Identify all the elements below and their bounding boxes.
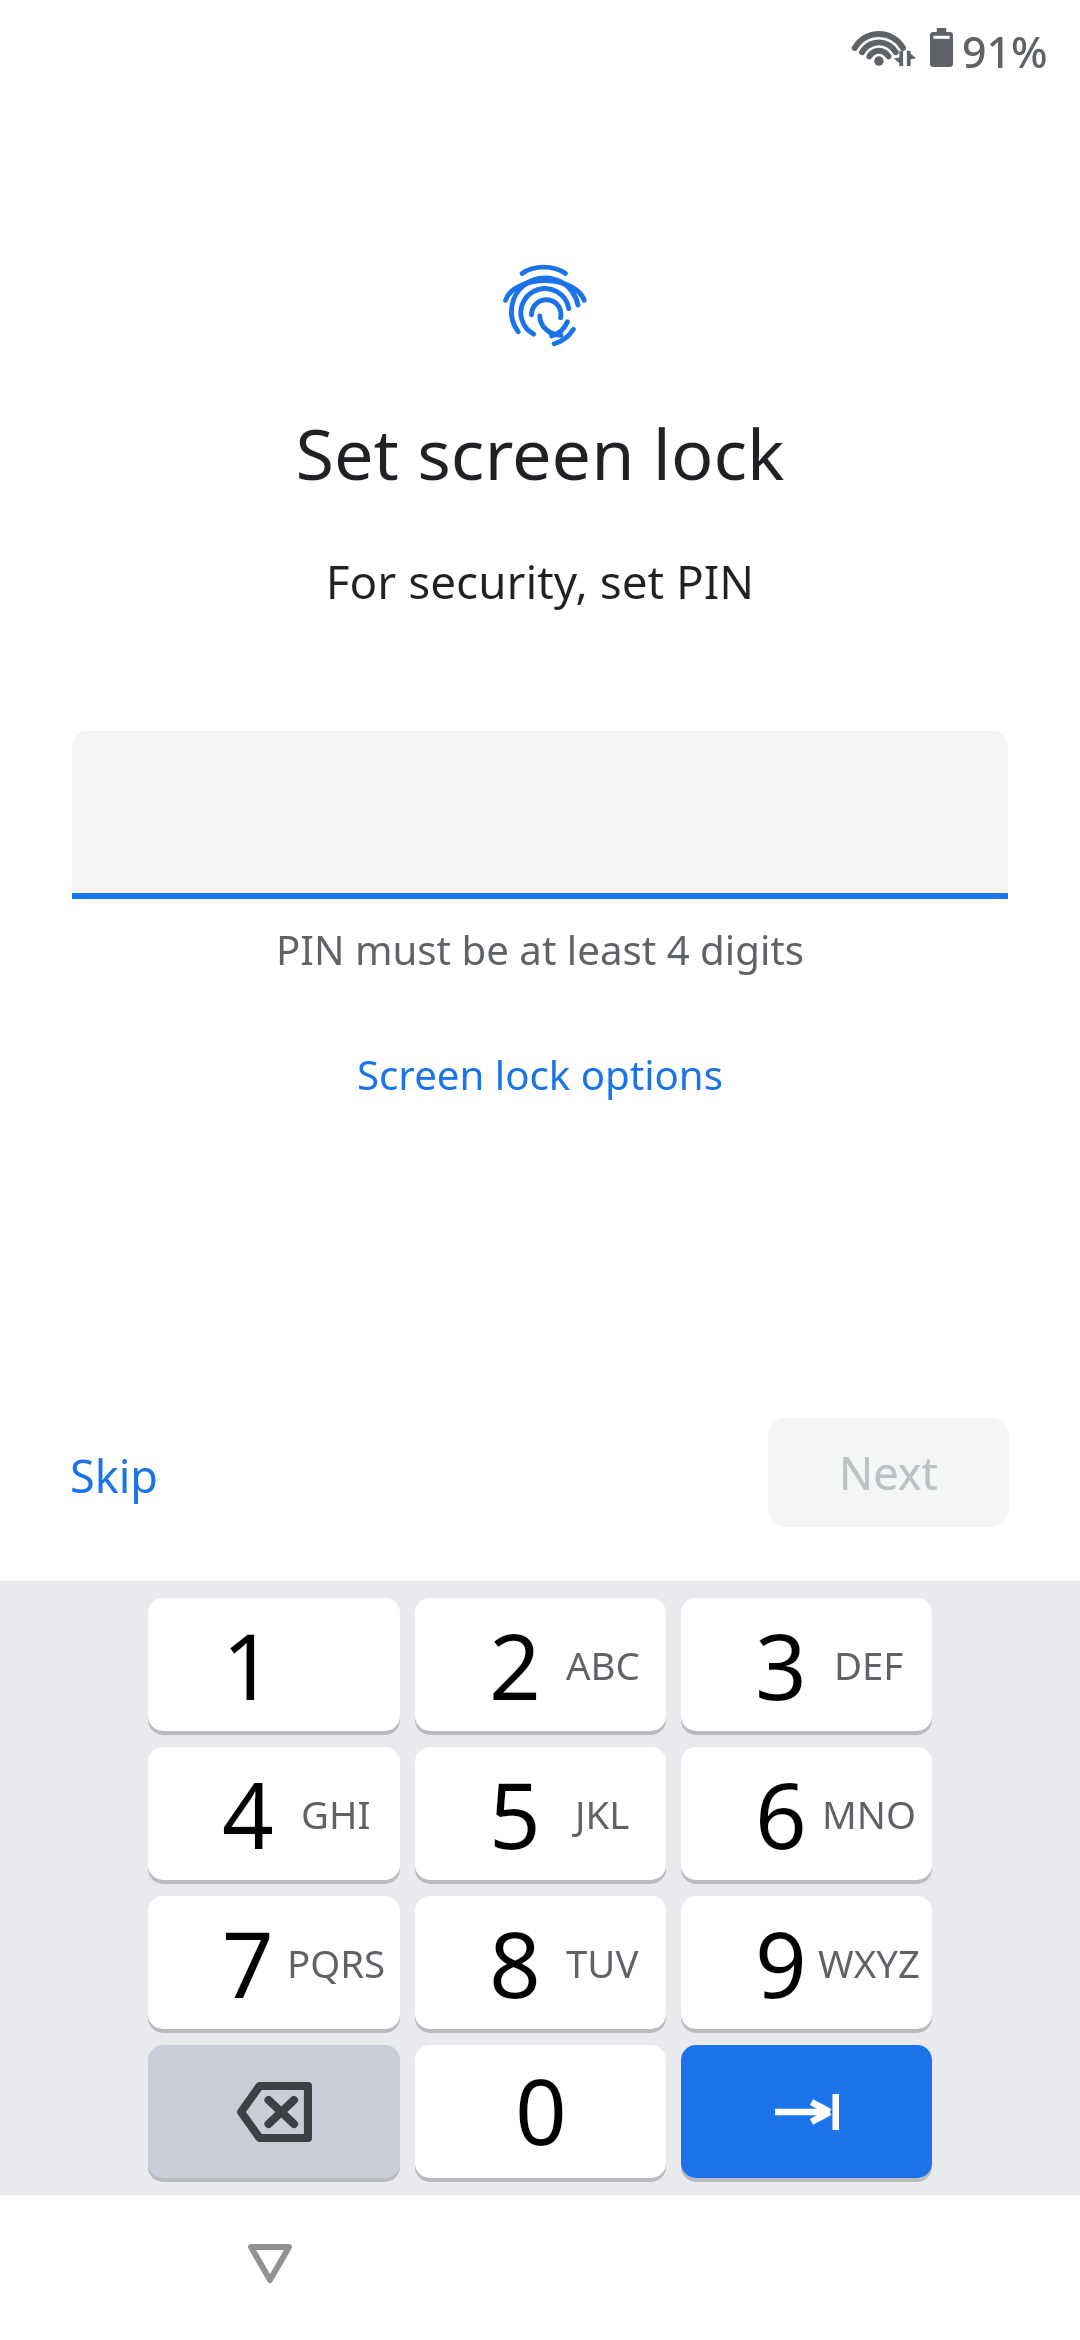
other: Enter (681, 2045, 932, 2178)
staticText: 9 (755, 1901, 807, 2024)
staticText: 2 (489, 1603, 541, 1726)
button[interactable]: 3 (681, 1598, 932, 1731)
button[interactable]: Hide keyboard (210, 2203, 330, 2323)
staticText: Skip (70, 1445, 159, 1506)
staticText: MNO (822, 1788, 916, 1840)
button[interactable]: 2 (415, 1598, 666, 1731)
button[interactable]: 0 (415, 2045, 666, 2178)
staticText: JKL (575, 1788, 630, 1840)
staticText: 1 (222, 1603, 274, 1726)
staticText: TUV (566, 1937, 639, 1989)
staticText: For security, set PIN (0, 550, 1080, 613)
button[interactable]: Skip (58, 1427, 171, 1524)
button[interactable]: 8 (415, 1896, 666, 2029)
button[interactable] (148, 2045, 400, 2178)
button[interactable]: 7 (148, 1896, 400, 2029)
button[interactable]: 9 (681, 1896, 932, 2029)
staticText: 7 (222, 1901, 274, 2024)
button[interactable]: Next (768, 1418, 1009, 1527)
button[interactable] (681, 2045, 932, 2178)
staticText: 91% (962, 22, 1048, 80)
staticText: 4 (222, 1752, 274, 1875)
staticText: Screen lock options (357, 1047, 723, 1102)
button[interactable]: Screen lock options (333, 1032, 747, 1117)
staticText: 8 (489, 1901, 541, 2024)
button[interactable]: 1 (148, 1598, 400, 1731)
staticText: 5 (489, 1752, 541, 1875)
button[interactable]: 4 (148, 1747, 400, 1880)
staticText: WXYZ (818, 1937, 920, 1989)
staticText: PQRS (287, 1937, 386, 1989)
other: Delete (148, 2045, 400, 2178)
staticText: 0 (515, 2048, 567, 2171)
staticText: DEF (834, 1639, 904, 1691)
button[interactable]: 5 (415, 1747, 666, 1880)
staticText: 3 (755, 1603, 807, 1726)
button[interactable]: 6 (681, 1747, 932, 1880)
staticText: Next (839, 1442, 938, 1503)
staticText: 6 (755, 1752, 807, 1875)
staticText: Set screen lock (0, 405, 1080, 501)
staticText: GHI (301, 1788, 371, 1840)
staticText: ABC (566, 1639, 640, 1691)
staticText: PIN must be at least 4 digits (0, 922, 1080, 977)
